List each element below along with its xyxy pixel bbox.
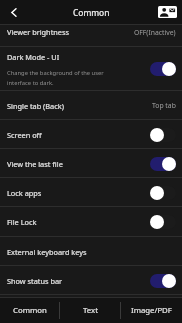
button[interactable]: Enabled [150,274,176,288]
staticText: Show status bar [7,276,63,286]
button[interactable]: Disabled [150,186,176,200]
staticText: Screen off [7,130,42,140]
staticText: Change the background of the user interf… [7,69,104,86]
button[interactable]: Image/PDF [121,298,182,323]
staticText: File Lock [7,217,37,227]
button[interactable]: File Lock [0,207,182,237]
staticText: Top tab [152,101,176,110]
staticText: OFF(Inactive) [134,28,176,37]
button[interactable]: Screen off [0,120,182,149]
button[interactable]: Show status bar [0,266,182,295]
button[interactable]: Text [60,298,121,323]
button[interactable]: Dark Mode - UI [0,47,182,91]
staticText: Single tab (Back) [7,101,64,111]
staticText: Common [73,7,110,18]
staticText: Viewer brightness [7,27,70,37]
staticText: View the last file [7,159,63,169]
button[interactable]: Viewer brightness [0,25,182,47]
button[interactable]: Single tab (Back) [0,91,182,120]
button[interactable]: View the last file [0,149,182,178]
button[interactable]: Common [0,298,60,323]
staticText: External keyboard keys [7,247,87,257]
button[interactable]: Enabled [150,157,176,171]
staticText: Lock apps [7,188,42,198]
button[interactable]: External keyboard keys [0,237,182,266]
staticText: Common [13,305,47,316]
button[interactable]: Lock apps [0,178,182,207]
staticText: Dark Mode - UI [7,52,60,62]
button[interactable]: Enabled [150,62,176,76]
button[interactable]: Contact info [156,2,178,22]
button[interactable]: Back [0,0,26,24]
staticText: Image/PDF [131,305,172,316]
button[interactable]: Disabled [150,128,176,142]
button[interactable]: Disabled [150,215,176,229]
staticText: Text [83,305,98,316]
